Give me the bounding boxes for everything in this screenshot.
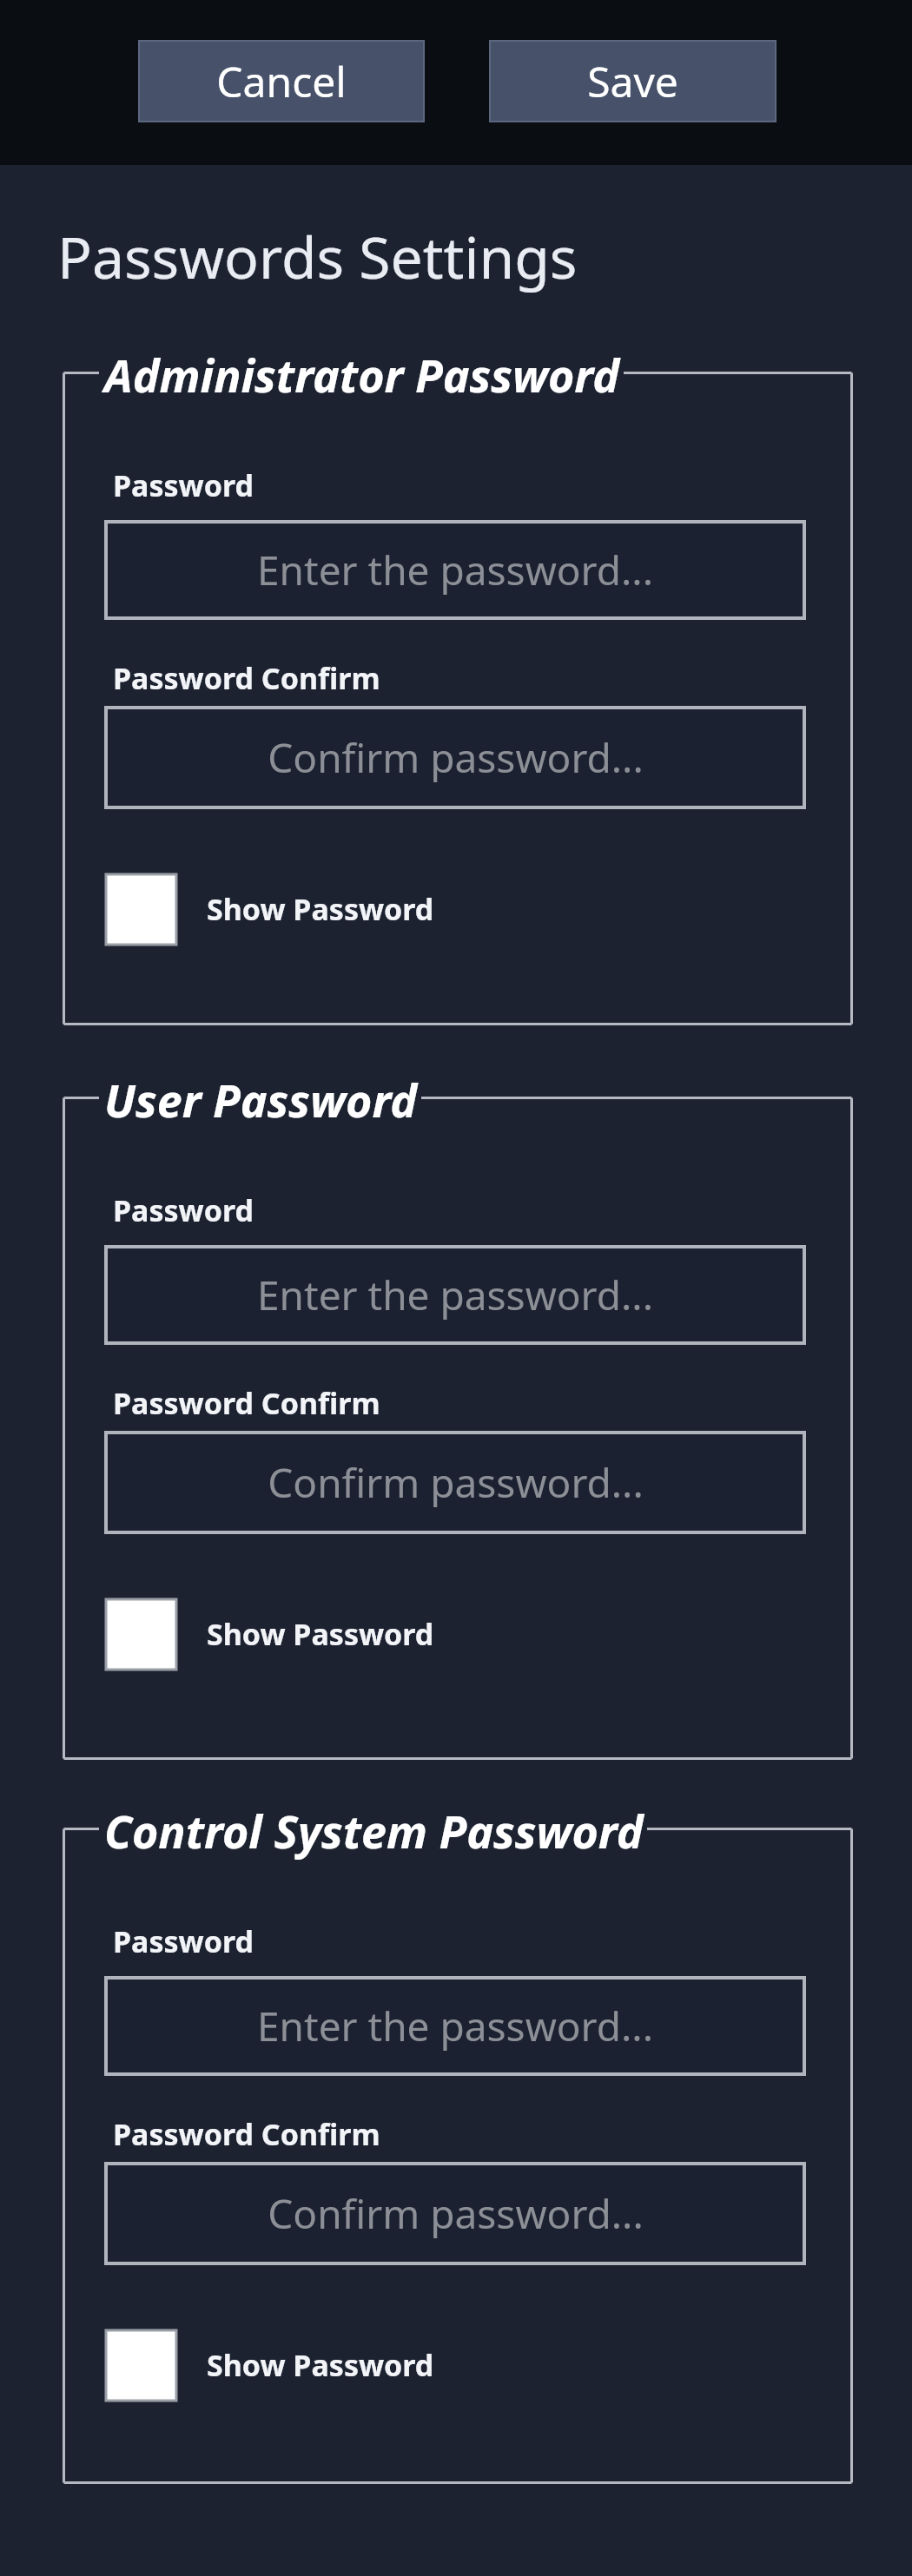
button[interactable]: Confirm password... xyxy=(106,1433,804,1532)
staticText: Confirm password... xyxy=(268,2186,644,2241)
button[interactable]: Show Password xyxy=(106,873,434,945)
staticText: Confirm password... xyxy=(268,1455,644,1510)
staticText: Show Password xyxy=(207,889,434,929)
staticText: Enter the password... xyxy=(257,1268,653,1322)
button[interactable]: Confirm password... xyxy=(106,2164,804,2263)
staticText: Save xyxy=(587,53,678,109)
staticText: Cancel xyxy=(216,53,347,109)
button[interactable]: Enter the password... xyxy=(106,1247,804,1343)
button[interactable]: Save xyxy=(490,41,776,122)
staticText: Administrator Password xyxy=(104,344,620,405)
staticText: Show Password xyxy=(207,1614,434,1654)
staticText: Control System Password xyxy=(104,1800,644,1861)
staticText: Password Confirm xyxy=(113,658,380,698)
button[interactable]: Enter the password... xyxy=(106,1978,804,2074)
staticText: Password xyxy=(113,465,254,505)
staticText: Show Password xyxy=(207,2345,434,2385)
button[interactable]: Confirm password... xyxy=(106,708,804,807)
button[interactable]: Show Password xyxy=(106,1598,434,1670)
staticText: Password xyxy=(113,1921,254,1961)
button[interactable]: Show Password xyxy=(106,2329,434,2401)
staticText: Passwords Settings xyxy=(57,217,578,295)
staticText: Password Confirm xyxy=(113,1383,380,1423)
staticText: Enter the password... xyxy=(257,543,653,597)
staticText: Confirm password... xyxy=(268,730,644,785)
staticText: User Password xyxy=(104,1069,418,1130)
button[interactable]: Enter the password... xyxy=(106,522,804,618)
staticText: Enter the password... xyxy=(257,1999,653,2053)
staticText: Password Confirm xyxy=(113,2114,380,2154)
staticText: Password xyxy=(113,1190,254,1230)
button[interactable]: Cancel xyxy=(139,41,424,122)
